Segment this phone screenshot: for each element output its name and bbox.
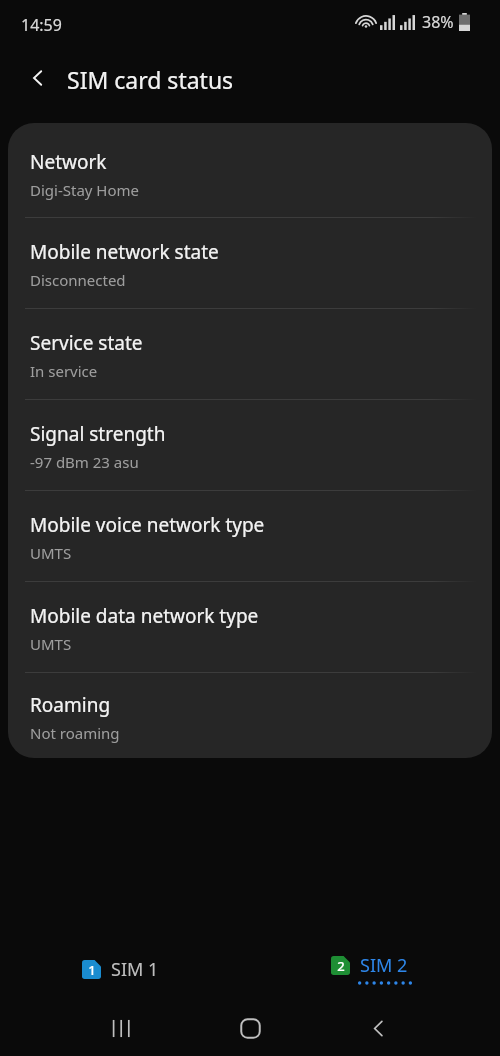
staticText: Mobile network state <box>30 239 219 265</box>
staticText: -97 dBm 23 asu <box>30 452 139 472</box>
staticText: SIM 1 <box>111 957 159 982</box>
button[interactable]: 2 <box>331 953 408 985</box>
staticText: Network <box>30 149 107 175</box>
staticText: Signal strength <box>30 421 166 447</box>
staticText: SIM 2 <box>360 953 408 978</box>
button[interactable]: Signal strength <box>8 400 492 490</box>
button[interactable]: Recents <box>93 1001 147 1055</box>
button[interactable]: Back <box>14 54 62 102</box>
staticText: In service <box>30 361 98 381</box>
staticText: Roaming <box>30 692 111 718</box>
button[interactable]: Service state <box>8 309 492 399</box>
staticText: UMTS <box>30 634 72 654</box>
staticText: Service state <box>30 330 143 356</box>
button[interactable]: Roaming <box>8 673 492 758</box>
button[interactable]: Mobile data network type <box>8 582 492 672</box>
staticText: 38% <box>422 11 454 33</box>
button[interactable]: Home <box>223 1001 277 1055</box>
staticText: Mobile data network type <box>30 603 259 629</box>
button[interactable]: Mobile network state <box>8 218 492 308</box>
staticText: Not roaming <box>30 723 120 743</box>
staticText: Digi-Stay Home <box>30 180 140 200</box>
staticText: 2 <box>337 957 345 975</box>
staticText: SIM card status <box>67 64 234 95</box>
staticText: 1 <box>88 961 96 979</box>
staticText: 14:59 <box>21 14 62 36</box>
button[interactable]: Back <box>351 1001 405 1055</box>
staticText: Mobile voice network type <box>30 512 265 538</box>
button[interactable]: Network <box>8 123 492 217</box>
staticText: Disconnected <box>30 270 126 290</box>
button[interactable]: Mobile voice network type <box>8 491 492 581</box>
button[interactable]: 1 <box>82 957 159 982</box>
staticText: UMTS <box>30 543 72 563</box>
